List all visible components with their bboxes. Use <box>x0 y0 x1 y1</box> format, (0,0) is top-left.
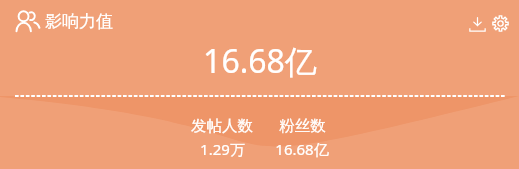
button[interactable]: 发帖人数 <box>191 116 253 159</box>
staticText: 16.68亿 <box>275 139 329 159</box>
button[interactable]: People <box>13 6 43 36</box>
button[interactable]: Settings <box>489 12 511 34</box>
staticText: 发帖人数 <box>191 116 253 136</box>
staticText: 16.68亿 <box>203 39 317 83</box>
button[interactable]: Download <box>466 12 488 34</box>
staticText: 1.29万 <box>200 139 245 159</box>
button[interactable]: 粉丝数 <box>275 116 329 159</box>
staticText: 粉丝数 <box>279 116 326 136</box>
staticText: 影响力值 <box>45 11 113 32</box>
